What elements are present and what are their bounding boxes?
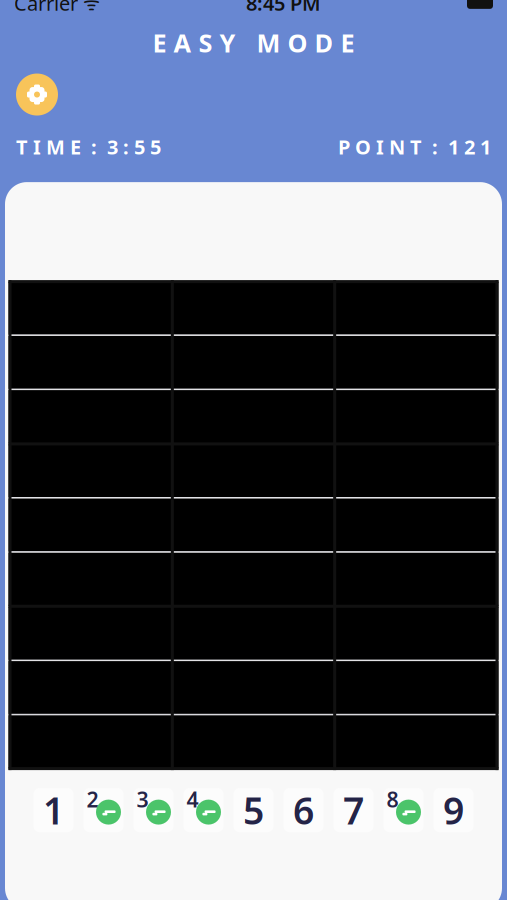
button[interactable]: 7 — [64, 498, 118, 552]
button[interactable] — [389, 715, 443, 769]
button[interactable] — [64, 281, 118, 335]
button[interactable] — [118, 390, 172, 444]
button[interactable]: 5 — [228, 786, 278, 834]
button[interactable]: 3 — [10, 335, 64, 390]
button[interactable] — [226, 606, 281, 661]
button[interactable]: 4 — [10, 715, 64, 769]
button[interactable]: 2 — [10, 498, 64, 552]
button[interactable]: 7 — [328, 786, 378, 834]
button[interactable]: 4 — [389, 606, 443, 661]
button[interactable]: 8 — [378, 786, 428, 834]
button[interactable] — [118, 606, 172, 661]
button[interactable]: 8 — [443, 335, 497, 390]
button[interactable] — [281, 444, 335, 498]
button[interactable] — [118, 444, 172, 498]
button[interactable]: 7 — [172, 444, 226, 498]
button[interactable]: 3 — [443, 606, 497, 661]
button[interactable]: 4 — [64, 335, 118, 390]
button[interactable]: 2 — [172, 552, 226, 606]
button[interactable]: 6 — [278, 786, 328, 834]
button[interactable] — [10, 552, 64, 606]
button[interactable]: 3 — [118, 552, 172, 606]
button[interactable]: 8 — [281, 552, 335, 606]
button[interactable]: 2 — [281, 281, 335, 335]
button[interactable]: 7 — [10, 606, 64, 661]
button[interactable]: 9 — [335, 335, 389, 390]
button[interactable] — [226, 552, 281, 606]
button[interactable]: 6 — [389, 281, 443, 335]
button[interactable]: 4 — [172, 661, 226, 715]
staticText: 1 — [43, 785, 64, 835]
button[interactable]: 9 — [443, 498, 497, 552]
button[interactable]: 9 — [428, 786, 478, 834]
button[interactable]: 2 — [335, 444, 389, 498]
button[interactable]: 2 — [389, 661, 443, 715]
button[interactable]: 8 — [172, 715, 226, 769]
button[interactable]: 5 — [118, 661, 172, 715]
button[interactable]: 8 — [226, 390, 281, 444]
button[interactable]: 7 — [226, 281, 281, 335]
button[interactable]: 1 — [389, 390, 443, 444]
button[interactable]: 5 — [335, 281, 389, 335]
button[interactable]: 8 — [389, 498, 443, 552]
button[interactable]: 1 — [10, 281, 64, 335]
button[interactable] — [10, 444, 64, 498]
button[interactable] — [172, 335, 226, 390]
button[interactable] — [226, 661, 281, 715]
button[interactable] — [64, 390, 118, 444]
button[interactable] — [172, 498, 226, 552]
button[interactable]: 4 — [281, 390, 335, 444]
button[interactable]: 8 — [118, 281, 172, 335]
button[interactable]: 5 — [389, 552, 443, 606]
button[interactable]: 8 — [64, 444, 118, 498]
button[interactable]: 3 — [128, 786, 178, 834]
button[interactable]: 3 — [64, 661, 118, 715]
button[interactable]: 7 — [281, 661, 335, 715]
button[interactable] — [10, 390, 64, 444]
button[interactable]: 5 — [443, 715, 497, 769]
button[interactable]: 2 — [78, 786, 128, 834]
button[interactable] — [281, 498, 335, 552]
button[interactable]: 3 — [172, 281, 226, 335]
button[interactable]: 7 — [335, 715, 389, 769]
button[interactable] — [64, 715, 118, 769]
button[interactable]: 4 — [443, 281, 497, 335]
button[interactable]: 2 — [226, 715, 281, 769]
button[interactable]: 8 — [335, 606, 389, 661]
button[interactable]: 3 — [281, 715, 335, 769]
button[interactable]: 7 — [443, 552, 497, 606]
button[interactable]: 4 — [226, 444, 281, 498]
button[interactable]: 3 — [335, 390, 389, 444]
button[interactable] — [281, 606, 335, 661]
button[interactable]: 2 — [64, 606, 118, 661]
button[interactable]: 6 — [443, 444, 497, 498]
button[interactable] — [172, 390, 226, 444]
button[interactable]: 4 — [335, 552, 389, 606]
button[interactable]: 3 — [226, 498, 281, 552]
button[interactable]: 7 — [389, 335, 443, 390]
button[interactable]: 6 — [118, 715, 172, 769]
button[interactable]: 4 — [118, 498, 172, 552]
button[interactable]: 1 — [443, 661, 497, 715]
button[interactable]: Settings — [16, 73, 58, 115]
staticText: 4 — [186, 785, 198, 813]
button[interactable]: 2 — [118, 335, 172, 390]
button[interactable]: 1 — [335, 498, 389, 552]
button[interactable] — [64, 552, 118, 606]
button[interactable] — [226, 335, 281, 390]
button[interactable]: 3 — [389, 444, 443, 498]
button[interactable]: 8 — [10, 661, 64, 715]
button[interactable]: 6 — [335, 661, 389, 715]
button[interactable] — [281, 335, 335, 390]
button[interactable]: 4 — [178, 786, 228, 834]
button[interactable]: 2 — [443, 390, 497, 444]
button[interactable]: 1 — [172, 606, 226, 661]
button[interactable]: 1 — [28, 786, 78, 834]
